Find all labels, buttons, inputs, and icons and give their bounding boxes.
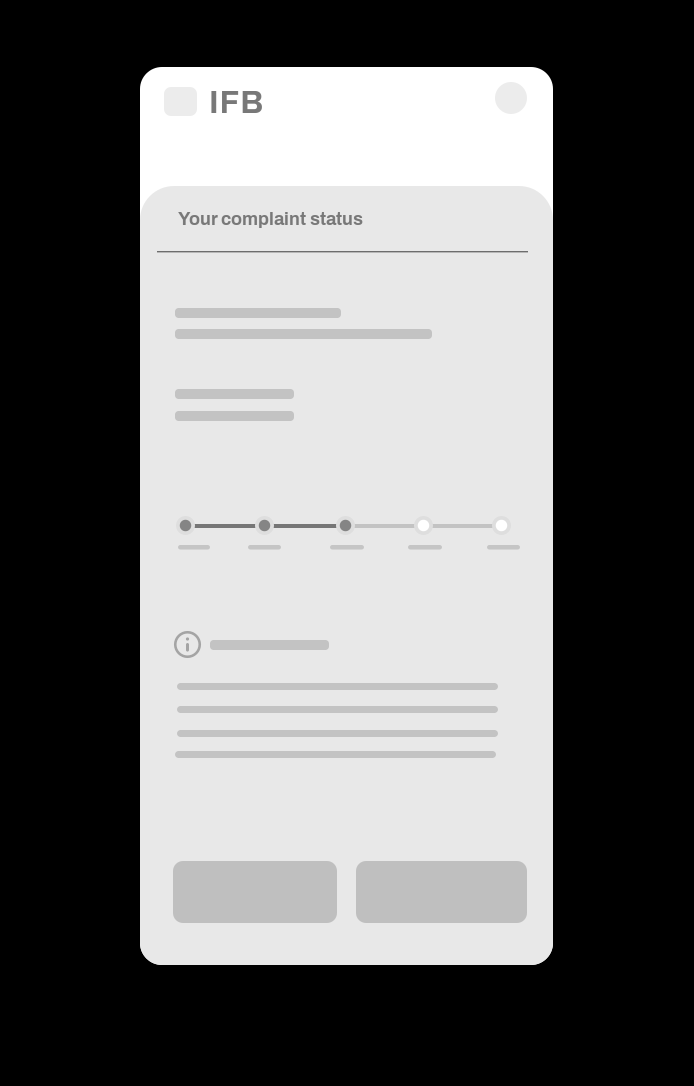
button[interactable]: IFB home — [164, 87, 197, 116]
staticText: I — [209, 85, 219, 120]
staticText: Your complaint status — [178, 209, 363, 229]
button[interactable]: Primary action — [173, 861, 337, 923]
button[interactable]: Secondary action — [356, 861, 527, 923]
staticText: F — [220, 85, 240, 120]
staticText: B — [240, 85, 263, 120]
button[interactable]: Account — [495, 82, 527, 114]
